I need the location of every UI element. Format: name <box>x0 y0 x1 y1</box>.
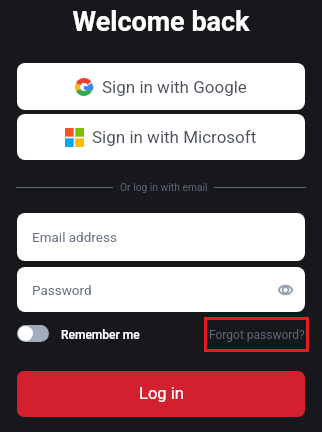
button[interactable]: Forgot password? <box>204 317 309 352</box>
staticText: Email address <box>32 229 117 245</box>
staticText: Welcome back <box>0 6 322 38</box>
button[interactable]: Log in <box>17 371 305 417</box>
button[interactable]: Sign in with Microsoft <box>17 114 305 160</box>
button[interactable]: Sign in with Google <box>17 63 305 110</box>
staticText: Sign in with Microsoft <box>92 127 257 147</box>
staticText: Sign in with Google <box>102 77 247 97</box>
staticText: Log in <box>139 384 184 403</box>
button[interactable]: Email address <box>17 213 305 261</box>
button[interactable]: Remember me <box>17 325 140 342</box>
staticText: Or log in with email <box>120 181 208 193</box>
staticText: Password <box>32 282 92 298</box>
staticText: Remember me <box>61 328 140 342</box>
staticText: Forgot password? <box>209 328 305 342</box>
button[interactable]: Password <box>17 267 305 312</box>
button[interactable]: Show password <box>274 279 296 301</box>
